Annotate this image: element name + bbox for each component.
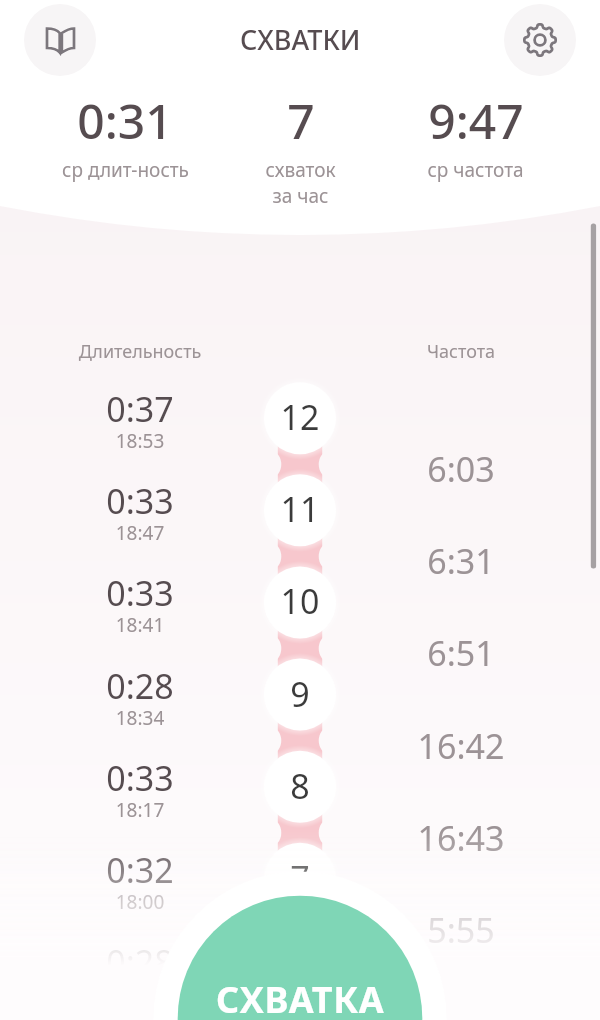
staticText: 12 <box>255 394 345 440</box>
staticText: Длительность <box>50 339 230 364</box>
staticText: 6:51 <box>371 630 551 676</box>
staticText: 0:33 <box>50 570 230 616</box>
staticText: 5:55 <box>371 907 551 953</box>
staticText: 7 <box>287 88 315 153</box>
staticText: 10 <box>255 578 345 624</box>
staticText: 6:03 <box>371 446 551 492</box>
button[interactable]: Guide <box>24 4 96 76</box>
staticText: 16:42 <box>371 723 551 769</box>
staticText: 18:53 <box>50 428 230 454</box>
staticText: 6:31 <box>371 538 551 584</box>
staticText: 18:17 <box>50 797 230 823</box>
staticText: 0:28 <box>50 939 230 985</box>
staticText: СХВАТКА <box>216 975 385 1020</box>
button[interactable]: СХВАТКА <box>178 896 422 1020</box>
staticText: 18:00 <box>50 889 230 915</box>
staticText: 0:31 <box>77 88 173 153</box>
staticText: 18:34 <box>50 705 230 731</box>
staticText: 16:43 <box>371 815 551 861</box>
staticText: 9:47 <box>428 88 524 153</box>
staticText: ср частота <box>427 157 524 183</box>
staticText: 8 <box>255 763 345 809</box>
staticText: 0:28 <box>50 663 230 709</box>
staticText: 9 <box>255 671 345 717</box>
staticText: СХВАТКИ <box>240 21 361 58</box>
staticText: Частота <box>371 339 551 364</box>
staticText: 18:47 <box>50 520 230 546</box>
staticText: схваток за час <box>265 157 336 208</box>
staticText: 6 <box>255 947 345 993</box>
staticText: 17:54 <box>50 981 230 1007</box>
staticText: 0:33 <box>50 755 230 801</box>
staticText: 0:33 <box>50 478 230 524</box>
staticText: 7 <box>255 855 345 901</box>
staticText: 0:32 <box>50 847 230 893</box>
staticText: 18:41 <box>50 612 230 638</box>
staticText: ср длит-ность <box>62 157 189 183</box>
staticText: 11 <box>255 486 345 532</box>
staticText: 0:37 <box>50 386 230 432</box>
button[interactable]: Settings <box>504 4 576 76</box>
